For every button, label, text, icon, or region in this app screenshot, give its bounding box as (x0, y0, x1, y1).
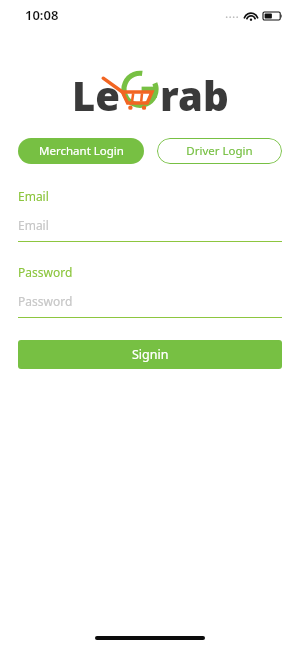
button[interactable]: Merchant Login (18, 138, 144, 164)
staticText: Email (18, 217, 49, 233)
staticText: Signin (132, 346, 169, 363)
staticText: 10:08 (25, 6, 59, 24)
staticText: Password (18, 293, 73, 309)
button[interactable]: Email (18, 188, 282, 242)
button[interactable]: Password (18, 264, 282, 318)
staticText: Le (72, 68, 120, 116)
button[interactable]: Signin (18, 340, 282, 369)
staticText: Merchant Login (39, 143, 124, 159)
staticText: Driver Login (186, 143, 253, 159)
button[interactable]: Driver Login (157, 138, 282, 164)
staticText: Password (18, 264, 73, 280)
staticText: Email (18, 188, 49, 204)
staticText: rab (160, 68, 229, 116)
